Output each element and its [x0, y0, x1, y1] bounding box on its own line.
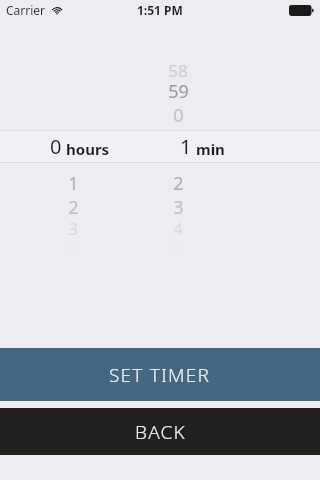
staticText: min	[196, 139, 225, 159]
staticText: 3	[173, 195, 184, 220]
staticText: 0	[173, 103, 184, 128]
staticText: Carrier	[6, 2, 46, 18]
staticText: SET TIMER	[109, 362, 211, 388]
staticText: BACK	[135, 419, 186, 445]
button[interactable]: SET TIMER	[0, 348, 320, 401]
staticText: 2	[68, 195, 79, 220]
staticText: 58	[168, 59, 188, 82]
staticText: 59	[168, 79, 189, 104]
staticText: 0	[50, 133, 62, 160]
staticText: 3	[68, 217, 78, 240]
staticText: 4	[173, 217, 183, 240]
staticText: 2	[173, 171, 184, 196]
button[interactable]: 0	[0, 130, 320, 163]
staticText: 1	[180, 133, 192, 160]
staticText: 1:51 PM	[137, 2, 183, 18]
staticText: hours	[66, 139, 110, 159]
button[interactable]: BACK	[0, 408, 320, 455]
staticText: 1	[68, 171, 79, 196]
